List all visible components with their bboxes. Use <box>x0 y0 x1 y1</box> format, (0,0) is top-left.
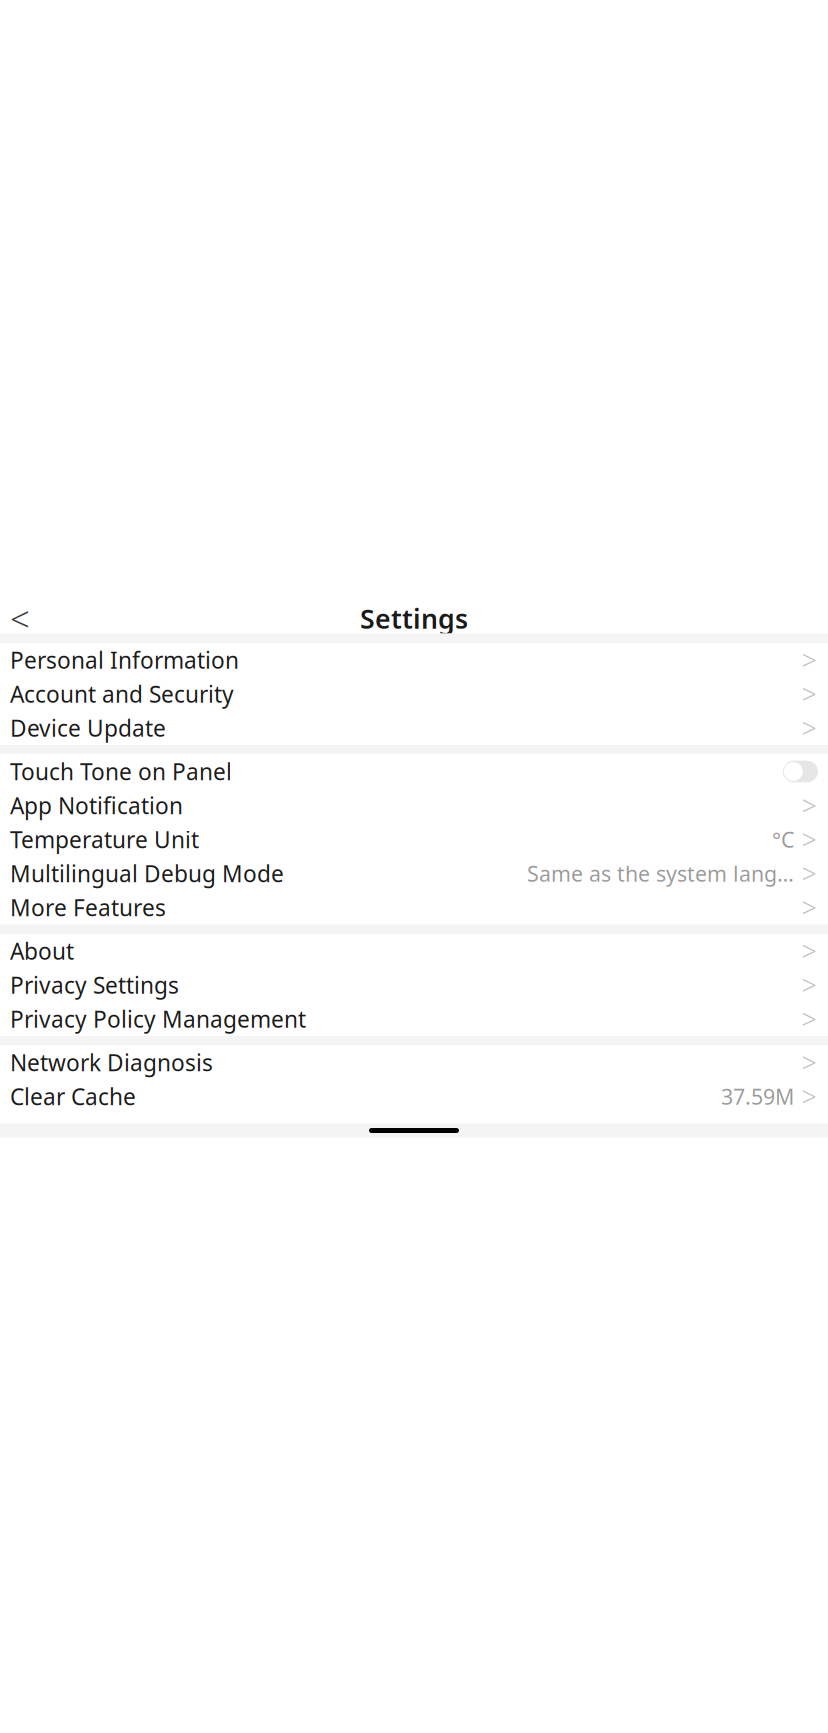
button[interactable]: Clear Cache <box>0 1079 828 1113</box>
staticText: > <box>801 933 816 969</box>
staticText: About <box>10 936 74 966</box>
staticText: > <box>801 822 816 857</box>
button[interactable]: Back <box>0 599 50 637</box>
staticText: Network Diagnosis <box>10 1047 213 1077</box>
staticText: < <box>10 595 30 641</box>
staticText: > <box>801 710 816 746</box>
staticText: Same as the system lang… <box>527 859 794 888</box>
button[interactable]: About <box>0 934 828 968</box>
staticText: More Features <box>10 892 166 922</box>
staticText: Privacy Settings <box>10 970 179 1000</box>
button[interactable]: Touch Tone on Panel <box>0 754 828 788</box>
button[interactable]: Temperature Unit <box>0 822 828 856</box>
staticText: > <box>801 642 816 678</box>
staticText: 37.59M <box>721 1082 794 1111</box>
staticText: > <box>801 967 816 1003</box>
staticText: Touch Tone on Panel <box>10 756 232 786</box>
staticText: Clear Cache <box>10 1081 136 1111</box>
staticText: App Notification <box>10 790 183 820</box>
staticText: Personal Information <box>10 645 239 675</box>
staticText: > <box>801 890 816 925</box>
staticText: > <box>801 1045 816 1080</box>
button[interactable]: Personal Information <box>0 643 828 677</box>
staticText: > <box>801 1001 816 1037</box>
staticText: Account and Security <box>10 679 234 709</box>
staticText: > <box>801 788 816 823</box>
button[interactable]: Privacy Settings <box>0 968 828 1002</box>
button[interactable]: Network Diagnosis <box>0 1045 828 1079</box>
staticText: Device Update <box>10 713 166 743</box>
button[interactable]: Device Update <box>0 711 828 745</box>
button[interactable]: App Notification <box>0 788 828 822</box>
button[interactable]: More Features <box>0 890 828 924</box>
staticText: > <box>801 856 816 891</box>
staticText: > <box>801 676 816 712</box>
button[interactable]: Privacy Policy Management <box>0 1002 828 1036</box>
staticText: Temperature Unit <box>10 824 199 854</box>
staticText: Settings <box>360 601 468 636</box>
staticText: Privacy Policy Management <box>10 1004 306 1034</box>
staticText: > <box>801 1079 816 1114</box>
button[interactable]: Multilingual Debug Mode <box>0 856 828 890</box>
staticText: °C <box>772 825 794 854</box>
button[interactable]: Account and Security <box>0 677 828 711</box>
staticText: Multilingual Debug Mode <box>10 858 284 888</box>
